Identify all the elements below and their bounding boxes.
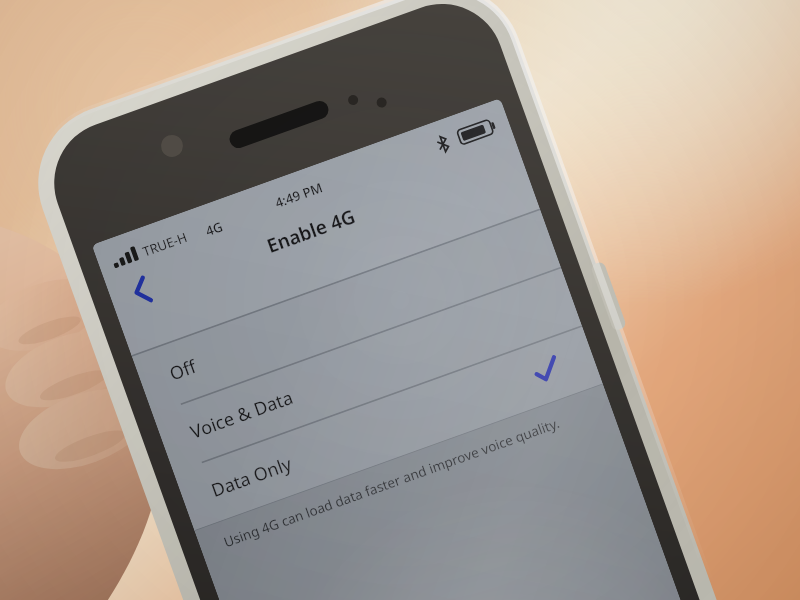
button[interactable] bbox=[0, 0, 800, 600]
